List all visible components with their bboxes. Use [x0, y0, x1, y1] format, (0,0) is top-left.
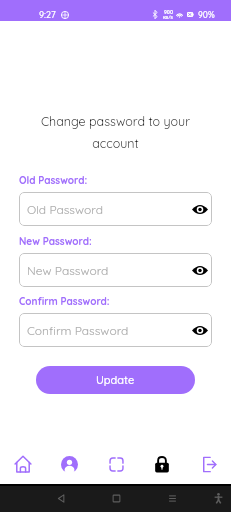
- staticText: Old Password: [27, 202, 103, 217]
- button[interactable]: Home: [110, 492, 123, 505]
- staticText: Change password to your account: [30, 113, 201, 151]
- button[interactable]: Old Password: [19, 192, 212, 226]
- button[interactable]: Profile: [52, 447, 86, 481]
- staticText: 90%: [198, 9, 215, 20]
- staticText: Update: [96, 373, 135, 387]
- button[interactable]: Accessibility: [212, 492, 225, 505]
- staticText: KB/S: [163, 15, 173, 20]
- staticText: New Password: [27, 263, 109, 278]
- button[interactable]: Security: [145, 447, 179, 481]
- button[interactable]: New Password: [19, 253, 212, 287]
- button[interactable]: Scan: [99, 447, 133, 481]
- button[interactable]: Show Old Password: [190, 199, 210, 219]
- staticText: Old Password:: [19, 174, 88, 187]
- staticText: Confirm Password:: [19, 295, 110, 308]
- button[interactable]: Confirm Password: [19, 313, 212, 347]
- button[interactable]: Back: [55, 492, 68, 505]
- staticText: Confirm Password: [27, 323, 129, 338]
- button[interactable]: Show New Password: [190, 260, 210, 280]
- staticText: 9:27: [39, 9, 56, 20]
- button[interactable]: Update: [36, 366, 195, 394]
- button[interactable]: Show Confirm Password: [190, 320, 210, 340]
- staticText: New Password:: [19, 235, 92, 248]
- button[interactable]: Log out: [191, 447, 225, 481]
- button[interactable]: Home: [6, 447, 40, 481]
- staticText: 900: [164, 9, 173, 15]
- button[interactable]: Recent apps: [166, 492, 179, 505]
